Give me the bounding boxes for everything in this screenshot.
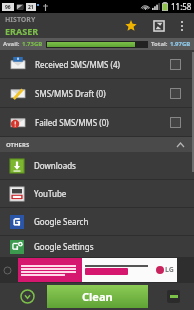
button[interactable]: Restore <box>145 13 173 38</box>
button[interactable]: OTHERS <box>0 137 194 152</box>
button[interactable]: Google Search <box>0 208 194 235</box>
staticText: 11:58 <box>171 1 192 12</box>
button[interactable]: Downloads <box>0 152 194 179</box>
staticText: Failed SMS/MMS (0) <box>35 117 109 128</box>
button[interactable]: Favorites <box>117 13 145 38</box>
staticText: SMS/MMS Draft (0) <box>35 88 106 99</box>
button[interactable]: Ad info <box>4 267 11 274</box>
button[interactable]: Received SMS/MMS (4) <box>0 50 194 78</box>
staticText: Google Settings <box>34 241 94 252</box>
staticText: Received SMS/MMS (4) <box>35 59 120 70</box>
staticText: Avail: <box>3 40 22 48</box>
staticText: Downloads <box>34 160 76 171</box>
staticText: Total: <box>151 40 170 48</box>
button[interactable]: SMS/MMS Draft (0) <box>0 79 194 107</box>
button[interactable]: Google Settings <box>0 236 194 257</box>
staticText: Clean <box>82 289 113 304</box>
staticText: Google Search <box>34 216 89 227</box>
staticText: 1.73GB <box>22 40 43 48</box>
button[interactable]: Failed SMS/MMS (0) <box>0 108 194 136</box>
button[interactable]: Expand <box>20 289 35 304</box>
staticText: OTHERS <box>6 141 30 149</box>
staticText: LG <box>165 265 174 275</box>
staticText: HISTORY <box>5 15 36 25</box>
staticText: 21 <box>28 4 34 11</box>
staticText: ERASER <box>5 25 39 37</box>
staticText: 96 <box>5 4 11 11</box>
staticText: 1.97GB <box>170 40 191 48</box>
button[interactable]: LG <box>18 258 177 282</box>
button[interactable]: YouTube <box>0 180 194 207</box>
button[interactable]: More options <box>173 13 191 38</box>
button[interactable]: Clean <box>47 285 148 308</box>
staticText: YouTube <box>34 188 67 199</box>
button[interactable]: Deselect all <box>167 290 180 303</box>
